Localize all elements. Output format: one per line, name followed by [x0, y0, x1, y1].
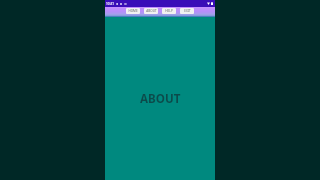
other: Battery [211, 2, 213, 5]
button[interactable]: EXIT [180, 8, 194, 14]
button[interactable]: HELP [162, 8, 176, 14]
staticText: HOME [128, 9, 138, 13]
staticText: EXIT [184, 9, 191, 13]
button[interactable]: ABOUT [144, 8, 158, 14]
staticText: ABOUT [146, 9, 157, 13]
other: Wifi [207, 2, 210, 5]
staticText: 10:31 [106, 2, 115, 6]
staticText: HELP [165, 9, 173, 13]
button[interactable]: HOME [126, 8, 140, 14]
staticText: ABOUT [140, 91, 181, 107]
